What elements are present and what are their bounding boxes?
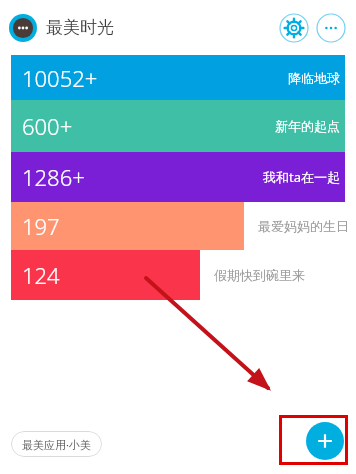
button[interactable]: 最美应用·小美 bbox=[11, 431, 102, 457]
staticText: 我和ta在一起 bbox=[263, 168, 340, 186]
button[interactable]: App icon bbox=[9, 14, 37, 42]
button[interactable]: Settings bbox=[279, 13, 309, 43]
staticText: 新年的起点 bbox=[275, 118, 340, 134]
staticText: 最美应用·小美 bbox=[22, 437, 91, 452]
button[interactable]: 197 bbox=[0, 202, 356, 250]
staticText: 最爱妈妈的生日 bbox=[258, 218, 349, 234]
staticText: 假期快到碗里来 bbox=[214, 267, 305, 283]
button[interactable]: 1286+ bbox=[0, 152, 356, 202]
staticText: 1286+ bbox=[22, 162, 85, 192]
staticText: 124 bbox=[22, 260, 60, 290]
staticText: 197 bbox=[22, 211, 60, 241]
staticText: 10052+ bbox=[22, 63, 98, 93]
staticText: 600+ bbox=[22, 111, 73, 141]
button[interactable]: 124 bbox=[0, 250, 356, 300]
staticText: 最美时光 bbox=[46, 17, 114, 38]
button[interactable]: 10052+ bbox=[0, 55, 356, 100]
button[interactable]: More options bbox=[316, 13, 346, 43]
button[interactable]: 600+ bbox=[0, 100, 356, 152]
staticText: 降临地球 bbox=[288, 70, 340, 86]
button[interactable]: Add bbox=[306, 422, 344, 460]
